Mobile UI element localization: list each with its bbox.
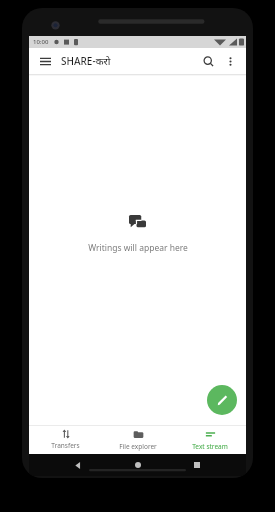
button[interactable]: Transfers [29,426,102,454]
staticText: Text stream [192,442,228,451]
button[interactable]: Home [128,455,148,475]
staticText: 10:00 [33,38,49,46]
button[interactable]: Compose new writing [207,385,237,415]
staticText: SHARE-करो [61,54,111,68]
button[interactable]: Recent apps [187,455,207,475]
staticText: Writings will appear here [88,242,188,254]
button[interactable]: Search [198,51,218,71]
staticText: Transfers [51,441,80,450]
button[interactable]: Back [68,455,88,475]
button[interactable]: Text stream [174,426,246,454]
staticText: File explorer [119,442,157,451]
button[interactable]: Open navigation drawer [35,51,55,71]
button[interactable]: More options [220,51,240,71]
button[interactable]: File explorer [102,426,174,454]
